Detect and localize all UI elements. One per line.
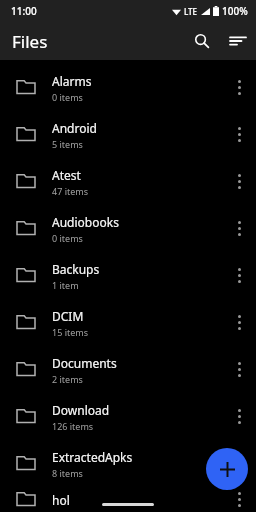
button[interactable]: More options bbox=[222, 440, 256, 487]
staticText: 11:00 bbox=[11, 4, 37, 18]
button[interactable]: DCIM bbox=[0, 299, 256, 346]
button[interactable]: More options bbox=[222, 487, 256, 512]
staticText: Download bbox=[52, 402, 110, 418]
staticText: 100% bbox=[222, 4, 248, 18]
staticText: Documents bbox=[52, 355, 117, 371]
button[interactable]: More options bbox=[222, 111, 256, 158]
button[interactable]: Alarms bbox=[0, 64, 256, 111]
button[interactable]: More options bbox=[222, 158, 256, 205]
button[interactable]: ExtractedApks bbox=[0, 440, 256, 487]
button[interactable]: More options bbox=[222, 252, 256, 299]
button[interactable]: Documents bbox=[0, 346, 256, 393]
button[interactable]: Atest bbox=[0, 158, 256, 205]
button[interactable]: More options bbox=[222, 299, 256, 346]
staticText: 5 items bbox=[52, 138, 83, 150]
staticText: 47 items bbox=[52, 185, 89, 197]
staticText: Audiobooks bbox=[52, 214, 119, 230]
staticText: DCIM bbox=[52, 308, 84, 324]
staticText: Backups bbox=[52, 261, 100, 277]
button[interactable]: Download bbox=[0, 393, 256, 440]
staticText: Alarms bbox=[52, 73, 92, 89]
staticText: Files bbox=[12, 30, 48, 53]
staticText: LTE bbox=[184, 6, 198, 17]
button[interactable]: Backups bbox=[0, 252, 256, 299]
staticText: 0 items bbox=[52, 91, 83, 103]
button[interactable]: hol bbox=[0, 487, 256, 512]
staticText: ExtractedApks bbox=[52, 449, 133, 465]
button[interactable]: Android bbox=[0, 111, 256, 158]
staticText: Android bbox=[52, 120, 97, 136]
staticText: 126 items bbox=[52, 420, 94, 432]
button[interactable]: More options bbox=[222, 205, 256, 252]
staticText: 2 items bbox=[52, 373, 83, 385]
staticText: 15 items bbox=[52, 326, 89, 338]
staticText: 0 items bbox=[52, 232, 83, 244]
button[interactable]: Add bbox=[206, 448, 248, 490]
button[interactable]: Audiobooks bbox=[0, 205, 256, 252]
staticText: 1 item bbox=[52, 279, 79, 291]
button[interactable]: More options bbox=[222, 393, 256, 440]
button[interactable]: More options bbox=[222, 346, 256, 393]
staticText: hol bbox=[52, 492, 70, 508]
staticText: 8 items bbox=[52, 467, 83, 479]
button[interactable]: More options bbox=[222, 64, 256, 111]
button[interactable]: Sort bbox=[220, 23, 256, 59]
staticText: Atest bbox=[52, 167, 81, 183]
button[interactable]: Search bbox=[184, 23, 220, 59]
